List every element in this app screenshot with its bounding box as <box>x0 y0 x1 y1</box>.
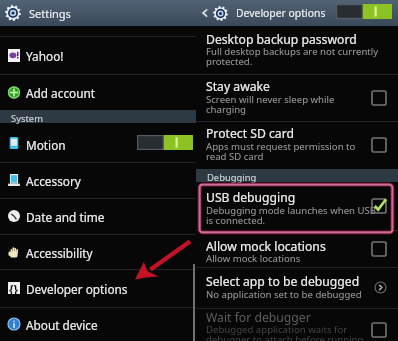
button[interactable]: Stay awake <box>196 74 398 121</box>
button[interactable]: Back <box>198 6 212 20</box>
staticText: System <box>11 112 43 125</box>
staticText: {} <box>9 282 19 294</box>
button[interactable]: Protect SD card <box>196 121 398 169</box>
staticText: No application set to be debugged <box>206 288 362 301</box>
staticText: Debugged application waits for debugger … <box>206 323 364 341</box>
button[interactable]: {} <box>0 269 196 307</box>
button[interactable]: Yahoo! <box>0 36 196 74</box>
staticText: Settings <box>29 6 71 21</box>
button[interactable]: Toggle on <box>336 4 392 19</box>
staticText: Add account <box>26 85 96 101</box>
staticText: Debugging mode launches when USB is conn… <box>206 204 376 227</box>
staticText: Accessory <box>26 173 81 189</box>
button[interactable]: Unchecked <box>372 91 386 105</box>
button[interactable]: Date and time <box>0 198 196 234</box>
button[interactable]: Settings <box>0 0 196 26</box>
staticText: Apps must request permission to read SD … <box>206 140 356 163</box>
button[interactable]: Unchecked <box>372 323 386 337</box>
staticText: Date and time <box>26 209 105 225</box>
button[interactable]: Allow mock locations <box>196 230 398 267</box>
staticText: Wait for debugger <box>206 309 311 326</box>
button[interactable]: Motion <box>0 123 196 162</box>
button[interactable]: About device <box>0 307 196 341</box>
button[interactable]: Wait for debugger <box>196 308 398 341</box>
button[interactable]: USB debugging <box>196 182 398 230</box>
button[interactable]: Checked <box>372 199 386 213</box>
staticText: Allow mock locations <box>206 252 301 265</box>
staticText: About device <box>26 317 98 333</box>
staticText: Debugging <box>207 171 257 184</box>
staticText: Accessibility <box>26 245 93 261</box>
button[interactable]: Accessibility <box>0 234 196 269</box>
staticText: Developer options <box>26 281 128 297</box>
staticText: Developer options <box>236 6 326 20</box>
staticText: Stay awake <box>206 78 270 95</box>
staticText: Motion <box>26 137 66 153</box>
button[interactable]: Open <box>374 281 387 294</box>
button[interactable]: Select app to be debugged <box>196 267 398 308</box>
staticText: Protect SD card <box>206 125 294 142</box>
button[interactable]: Unchecked <box>372 242 386 256</box>
staticText: Screen will never sleep while charging <box>206 93 335 116</box>
button[interactable]: Accessory <box>0 162 196 198</box>
staticText: Select app to be debugged <box>206 273 360 290</box>
staticText: Allow mock locations <box>206 238 326 255</box>
button[interactable]: Desktop backup password <box>196 26 398 74</box>
button[interactable]: Toggle on <box>137 135 193 150</box>
staticText: Desktop backup password <box>206 31 357 48</box>
button[interactable]: Unchecked <box>372 138 386 152</box>
button[interactable]: Add account <box>0 74 196 110</box>
staticText: Yahoo! <box>26 48 64 64</box>
staticText: Full desktop backups are not currently p… <box>206 45 379 68</box>
staticText: USB debugging <box>206 189 296 206</box>
